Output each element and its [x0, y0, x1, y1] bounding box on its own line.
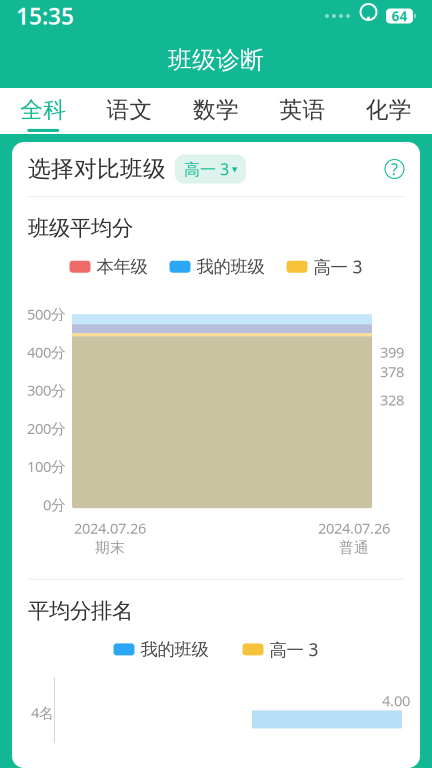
- staticText: 15:35: [16, 1, 74, 31]
- staticText: 化学: [366, 96, 412, 124]
- button[interactable]: 化学: [346, 87, 432, 135]
- staticText: 2024.07.26: [74, 518, 146, 538]
- staticText: 英语: [279, 96, 325, 124]
- staticText: 语文: [107, 96, 153, 124]
- staticText: 期末: [95, 539, 125, 557]
- button[interactable]: 全科: [0, 87, 86, 135]
- staticText: 100分: [27, 457, 66, 476]
- staticText: 200分: [27, 418, 66, 438]
- staticText: 数学: [193, 96, 239, 124]
- button[interactable]: 语文: [86, 87, 173, 135]
- button[interactable]: 数学: [173, 87, 259, 135]
- staticText: 64: [391, 7, 407, 25]
- staticText: 班级平均分: [28, 215, 133, 241]
- button[interactable]: 英语: [259, 87, 346, 135]
- staticText: 全科: [20, 96, 66, 124]
- staticText: ▾: [232, 163, 237, 175]
- staticText: 选择对比班级: [28, 155, 166, 183]
- staticText: 4.00: [382, 691, 410, 710]
- staticText: 500分: [27, 304, 66, 324]
- staticText: 378: [380, 362, 404, 381]
- staticText: 328: [380, 390, 404, 410]
- staticText: 399: [380, 342, 404, 362]
- staticText: 300分: [27, 380, 66, 400]
- button[interactable]: 帮助: [385, 159, 404, 178]
- staticText: 4名: [31, 703, 54, 722]
- staticText: 0分: [43, 495, 66, 514]
- staticText: 普通: [339, 539, 369, 557]
- staticText: 我的班级: [196, 256, 264, 277]
- staticText: 我的班级: [140, 639, 208, 660]
- staticText: 本年级: [96, 256, 147, 277]
- staticText: 班级诊断: [168, 45, 264, 75]
- button[interactable]: 高一 3: [175, 154, 246, 184]
- staticText: 高一 3: [184, 158, 229, 180]
- staticText: 高一 3: [313, 255, 362, 278]
- staticText: 2024.07.26: [318, 518, 390, 538]
- staticText: ?: [391, 158, 398, 180]
- staticText: 平均分排名: [28, 598, 133, 624]
- staticText: 高一 3: [269, 638, 318, 661]
- staticText: 400分: [27, 342, 66, 362]
